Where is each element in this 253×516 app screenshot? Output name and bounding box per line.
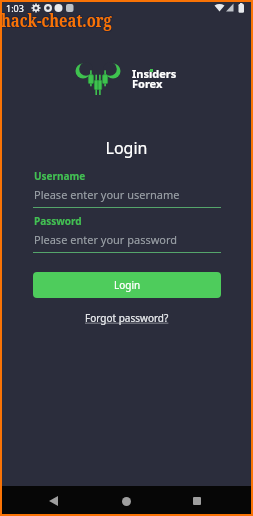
staticText: hack-cheat.org bbox=[0, 9, 112, 34]
staticText: hack-cheat.org bbox=[2, 8, 113, 33]
button[interactable]: Login bbox=[33, 272, 221, 298]
staticText: hack-cheat.org bbox=[2, 9, 113, 34]
staticText: Login bbox=[114, 278, 141, 292]
staticText: Forex bbox=[132, 76, 163, 91]
staticText: Please enter your password bbox=[34, 232, 178, 247]
staticText: Username bbox=[34, 169, 86, 183]
staticText: hack-cheat.org bbox=[1, 9, 112, 34]
staticText: Password bbox=[34, 214, 82, 228]
button[interactable] bbox=[38, 486, 68, 516]
staticText: Insiders bbox=[132, 66, 177, 81]
button[interactable] bbox=[111, 486, 141, 516]
button[interactable]: Please enter your username bbox=[33, 184, 221, 207]
staticText: hack-cheat.org bbox=[2, 7, 113, 32]
staticText: Forgot password? bbox=[85, 311, 169, 325]
staticText: hack-cheat.org bbox=[0, 8, 112, 33]
staticText: hack-cheat.org bbox=[1, 8, 112, 33]
staticText: Login bbox=[0, 137, 253, 159]
button[interactable]: Please enter your password bbox=[33, 229, 221, 252]
button[interactable] bbox=[182, 486, 212, 516]
staticText: hack-cheat.org bbox=[0, 7, 112, 32]
staticText: 1:03 bbox=[6, 2, 24, 14]
staticText: Please enter your username bbox=[34, 187, 180, 202]
staticText: hack-cheat.org bbox=[1, 7, 112, 32]
button[interactable]: Forgot password? bbox=[85, 311, 169, 325]
